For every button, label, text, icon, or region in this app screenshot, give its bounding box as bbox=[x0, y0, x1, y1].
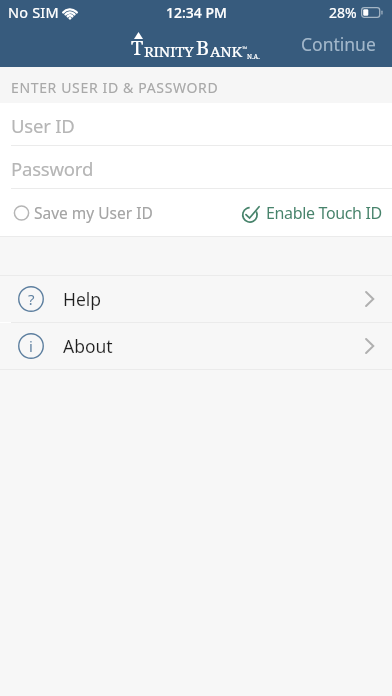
staticText: ANK bbox=[210, 41, 242, 61]
staticText: No SIM bbox=[8, 2, 59, 22]
button[interactable]: ? bbox=[0, 276, 392, 322]
staticText: Save my User ID bbox=[34, 202, 153, 223]
button[interactable]: Enable Touch ID bbox=[234, 194, 392, 232]
button[interactable]: Continue bbox=[287, 24, 392, 67]
staticText: B bbox=[196, 34, 210, 61]
staticText: 28% bbox=[329, 3, 357, 22]
staticText: 12:34 PM bbox=[166, 3, 227, 22]
staticText: ™ bbox=[242, 45, 248, 53]
button[interactable]: User ID bbox=[0, 103, 392, 145]
staticText: Help bbox=[63, 287, 102, 311]
staticText: About bbox=[63, 334, 113, 358]
staticText: i bbox=[29, 336, 33, 356]
button[interactable]: Password bbox=[0, 146, 392, 188]
staticText: T bbox=[131, 34, 144, 61]
staticText: Continue bbox=[301, 32, 376, 55]
button[interactable]: i bbox=[0, 323, 392, 369]
staticText: RINITY bbox=[144, 41, 194, 61]
staticText: Enable Touch ID bbox=[266, 202, 382, 224]
staticText: N.A. bbox=[247, 52, 260, 61]
staticText: ? bbox=[28, 289, 35, 309]
staticText: Password bbox=[11, 156, 94, 181]
staticText: ENTER USER ID & PASSWORD bbox=[11, 78, 219, 97]
staticText: User ID bbox=[11, 113, 75, 138]
button[interactable]: Save my User ID bbox=[0, 194, 161, 231]
